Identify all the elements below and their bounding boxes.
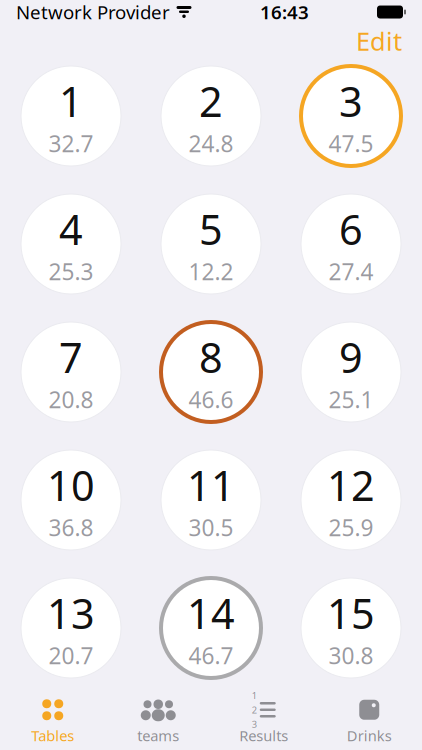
- button[interactable]: 11: [161, 450, 261, 550]
- button[interactable]: Drinks: [316, 691, 422, 750]
- staticText: 25.1: [328, 384, 373, 414]
- staticText: 16:43: [260, 0, 309, 24]
- staticText: 13: [47, 585, 95, 640]
- button[interactable]: 13: [21, 578, 121, 678]
- staticText: 9: [339, 329, 363, 384]
- staticText: 36.8: [48, 512, 93, 542]
- staticText: Results: [239, 726, 288, 745]
- staticText: 3: [252, 718, 257, 730]
- staticText: 2: [199, 73, 223, 128]
- staticText: 3: [339, 73, 363, 128]
- staticText: 25.3: [48, 256, 93, 286]
- staticText: 12: [327, 457, 375, 512]
- button[interactable]: 4: [21, 194, 121, 294]
- button[interactable]: 3: [301, 66, 401, 166]
- button[interactable]: 5: [161, 194, 261, 294]
- button[interactable]: 2: [161, 66, 261, 166]
- staticText: 8: [199, 329, 223, 384]
- staticText: Network Provider: [16, 0, 170, 24]
- staticText: teams: [137, 726, 179, 745]
- button[interactable]: 1: [211, 691, 316, 750]
- button[interactable]: 15: [301, 578, 401, 678]
- staticText: 10: [47, 457, 95, 512]
- staticText: 25.9: [328, 512, 373, 542]
- button[interactable]: 14: [161, 578, 261, 678]
- staticText: 1: [59, 73, 83, 128]
- staticText: 4: [59, 201, 83, 256]
- staticText: 46.7: [188, 640, 233, 670]
- staticText: Tables: [31, 726, 74, 745]
- button[interactable]: 10: [21, 450, 121, 550]
- staticText: 30.8: [328, 640, 373, 670]
- staticText: 1: [252, 689, 257, 702]
- staticText: 11: [187, 457, 235, 512]
- staticText: 46.6: [188, 384, 233, 414]
- staticText: 30.5: [188, 512, 233, 542]
- button[interactable]: 1: [21, 66, 121, 166]
- staticText: 15: [327, 585, 375, 640]
- staticText: 12.2: [188, 256, 233, 286]
- button[interactable]: Tables: [0, 691, 105, 750]
- staticText: 7: [59, 329, 83, 384]
- staticText: 24.8: [188, 128, 233, 158]
- button[interactable]: teams: [105, 691, 211, 750]
- staticText: 6: [339, 201, 363, 256]
- staticText: Drinks: [347, 726, 392, 745]
- button[interactable]: 9: [301, 322, 401, 422]
- button[interactable]: Edit: [346, 18, 412, 64]
- staticText: 32.7: [48, 128, 93, 158]
- button[interactable]: 8: [161, 322, 261, 422]
- staticText: 14: [187, 585, 235, 640]
- staticText: 47.5: [328, 128, 373, 158]
- staticText: 20.7: [48, 640, 93, 670]
- staticText: 27.4: [328, 256, 373, 286]
- staticText: Edit: [356, 24, 402, 58]
- staticText: 5: [199, 201, 223, 256]
- staticText: 20.8: [48, 384, 93, 414]
- button[interactable]: 7: [21, 322, 121, 422]
- button[interactable]: 6: [301, 194, 401, 294]
- staticText: 2: [252, 704, 257, 716]
- button[interactable]: 12: [301, 450, 401, 550]
